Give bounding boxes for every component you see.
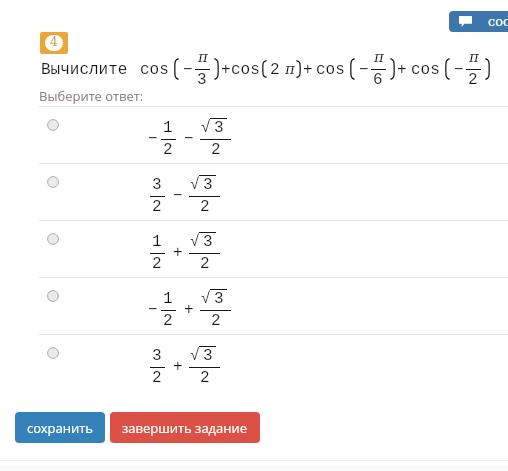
staticText: 2 <box>200 369 210 387</box>
button[interactable] <box>0 220 508 277</box>
staticText: π <box>374 48 384 65</box>
staticText: 2 <box>200 198 210 216</box>
button[interactable]: завершить задание <box>110 412 260 443</box>
staticText: сохранить <box>27 419 94 437</box>
button[interactable] <box>0 334 508 391</box>
staticText: 3 <box>152 176 162 194</box>
staticText: 1 <box>152 233 162 251</box>
staticText: 3 <box>203 233 213 251</box>
staticText: √ <box>190 176 200 194</box>
staticText: − <box>148 301 158 319</box>
staticText: 2 <box>163 312 173 330</box>
staticText: 2 <box>163 141 173 159</box>
button[interactable] <box>0 163 508 220</box>
staticText: π <box>198 48 208 65</box>
staticText: cos <box>316 61 345 79</box>
staticText: + <box>173 358 183 376</box>
staticText: + <box>173 244 183 262</box>
staticText: − <box>183 61 193 79</box>
staticText: 2 <box>152 255 162 273</box>
staticText: 3 <box>152 347 162 365</box>
staticText: 2 <box>211 141 221 159</box>
staticText: сообщить <box>488 14 508 29</box>
staticText: cos <box>140 61 169 79</box>
button[interactable]: сохранить <box>15 412 105 443</box>
button[interactable] <box>0 106 508 163</box>
staticText: 3 <box>214 119 224 137</box>
staticText: √ <box>190 347 200 365</box>
button[interactable]: сообщить об ошибке <box>449 11 508 32</box>
staticText: − <box>184 130 194 148</box>
staticText: 2 <box>200 255 210 273</box>
staticText: cos <box>231 61 260 79</box>
staticText: 3 <box>197 71 207 89</box>
staticText: − <box>359 61 369 79</box>
staticText: Выберите ответ: <box>39 87 144 105</box>
staticText: π <box>469 48 479 65</box>
staticText: √ <box>201 119 211 137</box>
staticText: + <box>221 61 231 79</box>
staticText: 4 <box>50 35 58 49</box>
staticText: 1 <box>163 290 173 308</box>
staticText: + <box>397 61 407 79</box>
staticText: √ <box>201 290 211 308</box>
staticText: 2 <box>270 61 280 79</box>
staticText: + <box>303 61 313 79</box>
staticText: cos <box>411 61 440 79</box>
staticText: − <box>454 61 464 79</box>
staticText: 3 <box>203 176 213 194</box>
staticText: завершить задание <box>122 419 248 437</box>
staticText: 6 <box>373 71 383 89</box>
staticText: − <box>148 130 158 148</box>
staticText: Вычислите <box>41 61 128 79</box>
staticText: 3 <box>214 290 224 308</box>
staticText: √ <box>190 233 200 251</box>
staticText: 2 <box>152 198 162 216</box>
staticText: 2 <box>468 71 478 89</box>
staticText: π <box>285 60 295 77</box>
staticText: 1 <box>163 119 173 137</box>
staticText: + <box>184 301 194 319</box>
staticText: − <box>173 187 183 205</box>
button[interactable] <box>0 277 508 334</box>
staticText: 2 <box>152 369 162 387</box>
staticText: 3 <box>203 347 213 365</box>
staticText: 2 <box>211 312 221 330</box>
